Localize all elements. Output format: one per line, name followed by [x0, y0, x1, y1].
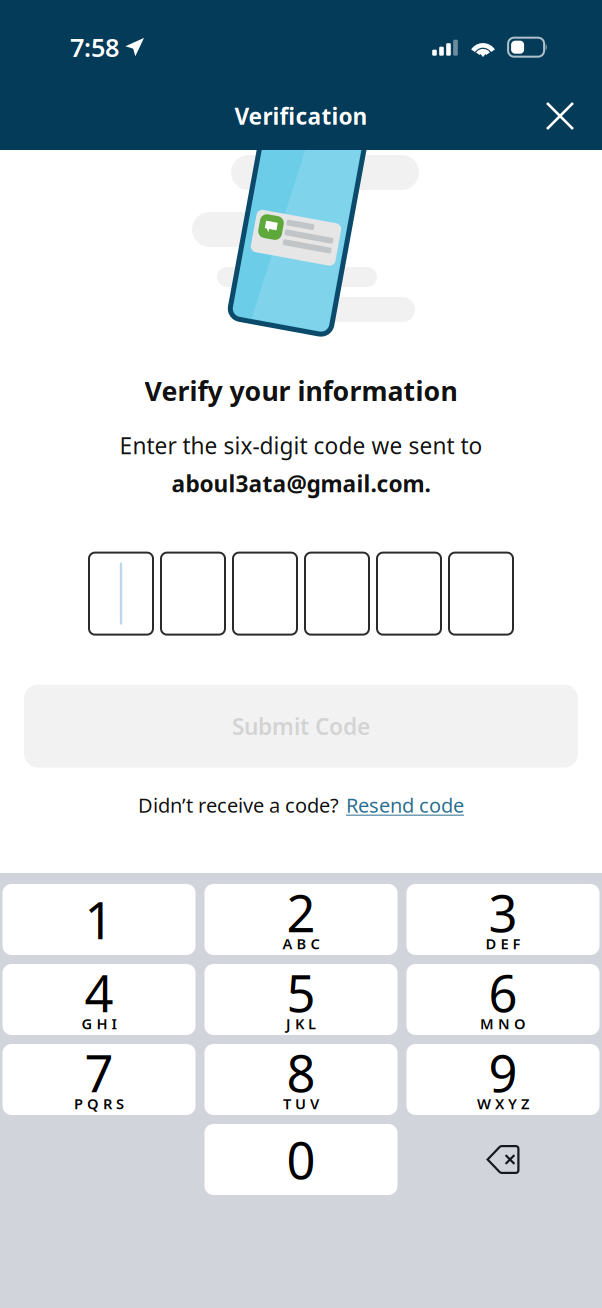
staticText: U [295, 1094, 306, 1113]
staticText: Y [508, 1094, 517, 1113]
staticText: J [286, 1014, 291, 1033]
button[interactable]: 5 [204, 964, 397, 1035]
button[interactable]: 2 [204, 884, 397, 955]
staticText: M [480, 1014, 494, 1033]
button[interactable]: Submit Code [24, 685, 578, 768]
staticText: A [282, 934, 292, 953]
staticText: 7 [84, 1039, 113, 1106]
staticText: C [310, 934, 319, 953]
staticText: S [116, 1094, 124, 1113]
staticText: L [308, 1014, 316, 1033]
staticText: W [477, 1094, 491, 1113]
staticText: 8 [286, 1039, 315, 1106]
button[interactable]: 8 [204, 1044, 397, 1115]
button[interactable]: Resend code [346, 792, 464, 818]
staticText: V [310, 1094, 319, 1113]
staticText: Resend code [346, 792, 464, 818]
staticText: Submit Code [232, 711, 370, 741]
staticText: I [111, 1014, 116, 1033]
staticText: Z [521, 1094, 529, 1113]
staticText: T [283, 1094, 291, 1113]
staticText: Q [87, 1094, 99, 1113]
staticText: Verify your information [144, 373, 457, 408]
button[interactable]: Code digit 5 [377, 553, 441, 635]
button[interactable]: 3 [406, 884, 599, 955]
button[interactable]: Code digit 4 [305, 553, 369, 635]
staticText: 6 [488, 959, 517, 1026]
staticText: 5 [286, 959, 315, 1026]
staticText: 1 [84, 886, 113, 953]
button[interactable]: 7 [2, 1044, 195, 1115]
button[interactable]: Code digit 3 [233, 553, 297, 635]
button[interactable]: Delete [406, 1124, 599, 1195]
staticText: K [295, 1014, 304, 1033]
staticText: Verification [234, 101, 367, 131]
button[interactable]: Close [533, 89, 587, 143]
staticText: B [296, 934, 306, 953]
staticText: 2 [286, 879, 315, 946]
staticText: R [103, 1094, 112, 1113]
staticText: G [81, 1014, 92, 1033]
button[interactable]: 4 [2, 964, 195, 1035]
button[interactable]: 9 [406, 1044, 599, 1115]
staticText: Didn’t receive a code? [138, 792, 339, 818]
staticText: N [498, 1014, 510, 1033]
button[interactable]: Code digit 1 [89, 553, 153, 635]
staticText: 7:58 [70, 30, 119, 64]
staticText: P [74, 1094, 83, 1113]
staticText: D [485, 934, 496, 953]
staticText: 9 [488, 1039, 517, 1106]
button[interactable]: Code digit 6 [449, 553, 513, 635]
staticText: aboul3ata@gmail.com. [171, 468, 430, 499]
button[interactable]: 1 [2, 884, 195, 955]
staticText: 4 [84, 959, 113, 1026]
staticText: H [96, 1014, 107, 1033]
staticText: F [512, 934, 520, 953]
staticText: 3 [488, 879, 517, 946]
button[interactable]: Code digit 2 [161, 553, 225, 635]
button[interactable]: 0 [204, 1124, 397, 1195]
staticText: X [495, 1094, 504, 1113]
staticText: Enter the six-digit code we sent to [119, 430, 482, 460]
staticText: E [500, 934, 508, 953]
staticText: 0 [286, 1126, 315, 1193]
button[interactable]: 6 [406, 964, 599, 1035]
staticText: O [514, 1014, 526, 1033]
